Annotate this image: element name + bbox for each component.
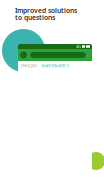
staticText: ENGLISH [21,63,37,68]
staticText: Improved solutions [15,6,77,15]
staticText: to questions [15,13,55,22]
staticText: MATHEMATICS [42,63,69,68]
staticText: 4G [76,44,81,49]
